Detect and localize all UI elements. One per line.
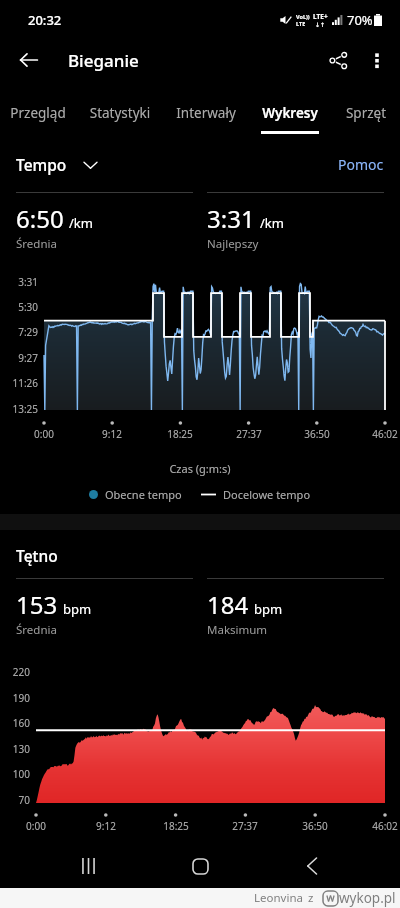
staticText: Docelowe tempo: [223, 487, 311, 502]
staticText: 100: [0, 767, 30, 781]
staticText: Średnia: [16, 622, 57, 638]
staticText: Średnia: [16, 236, 57, 252]
staticText: wykop.pl: [339, 889, 396, 907]
staticText: 20:32: [28, 11, 62, 29]
staticText: 7:29: [0, 325, 38, 339]
staticText: ↓↑: [315, 21, 326, 28]
staticText: 3:31: [0, 275, 38, 289]
staticText: 220: [0, 665, 30, 679]
button[interactable]: Back: [9, 40, 49, 80]
staticText: 36:50: [291, 819, 339, 833]
staticText: Maksimum: [207, 622, 268, 638]
staticText: 130: [0, 742, 30, 756]
staticText: 18:25: [152, 819, 200, 833]
staticText: Bieganie: [68, 49, 139, 72]
staticText: 46:02: [361, 427, 400, 441]
staticText: Statystyki: [82, 104, 158, 122]
staticText: 0:00: [12, 819, 60, 833]
staticText: z: [308, 890, 314, 906]
button[interactable]: Interwały: [168, 90, 244, 136]
staticText: 70: [0, 793, 30, 807]
staticText: Sprzęt: [336, 104, 396, 122]
staticText: 11:26: [0, 376, 38, 390]
staticText: 0:00: [20, 427, 68, 441]
staticText: 5:30: [0, 300, 38, 314]
staticText: 184: [207, 588, 249, 621]
button[interactable]: Share: [316, 38, 360, 82]
button[interactable]: Pomoc: [338, 155, 384, 174]
staticText: Obecne tempo: [105, 487, 182, 502]
staticText: Pomoc: [338, 155, 384, 174]
button[interactable]: Statystyki: [82, 90, 158, 136]
staticText: 36:50: [293, 427, 341, 441]
staticText: Przegląd: [4, 104, 72, 122]
staticText: 153: [16, 588, 58, 621]
button[interactable]: Back: [289, 843, 335, 889]
staticText: Wykresy: [254, 104, 326, 122]
button[interactable]: Wykresy: [254, 90, 326, 136]
button[interactable]: Sprzęt: [336, 90, 396, 136]
staticText: 9:12: [88, 427, 136, 441]
staticText: 46:02: [361, 819, 400, 833]
staticText: Czas (g:m:s): [0, 461, 400, 476]
button[interactable]: Przegląd: [4, 90, 72, 136]
staticText: /km: [260, 214, 284, 232]
staticText: 27:37: [221, 819, 269, 833]
staticText: VoL)): [296, 13, 310, 20]
staticText: bpm: [63, 600, 92, 618]
staticText: LTE+: [313, 12, 328, 21]
staticText: Tętno: [16, 545, 58, 566]
staticText: 13:25: [0, 402, 38, 416]
staticText: Interwały: [168, 104, 244, 122]
staticText: 190: [0, 691, 30, 705]
staticText: 18:25: [156, 427, 204, 441]
staticText: Najlepszy: [207, 236, 259, 252]
staticText: 160: [0, 716, 30, 730]
staticText: 70%: [347, 11, 373, 29]
staticText: 6:50: [16, 202, 64, 235]
button[interactable]: Home: [177, 843, 223, 889]
staticText: Leonvina: [254, 890, 303, 906]
button[interactable]: Tempo: [16, 154, 97, 175]
button[interactable]: More options: [355, 38, 399, 82]
staticText: LTE: [296, 20, 306, 27]
staticText: bpm: [254, 600, 283, 618]
staticText: 3:31: [207, 202, 255, 235]
staticText: /km: [69, 214, 93, 232]
staticText: 9:12: [82, 819, 130, 833]
staticText: 9:27: [0, 351, 38, 365]
staticText: 27:37: [225, 427, 273, 441]
button[interactable]: Recent apps: [65, 843, 111, 889]
staticText: Tempo: [16, 154, 67, 175]
